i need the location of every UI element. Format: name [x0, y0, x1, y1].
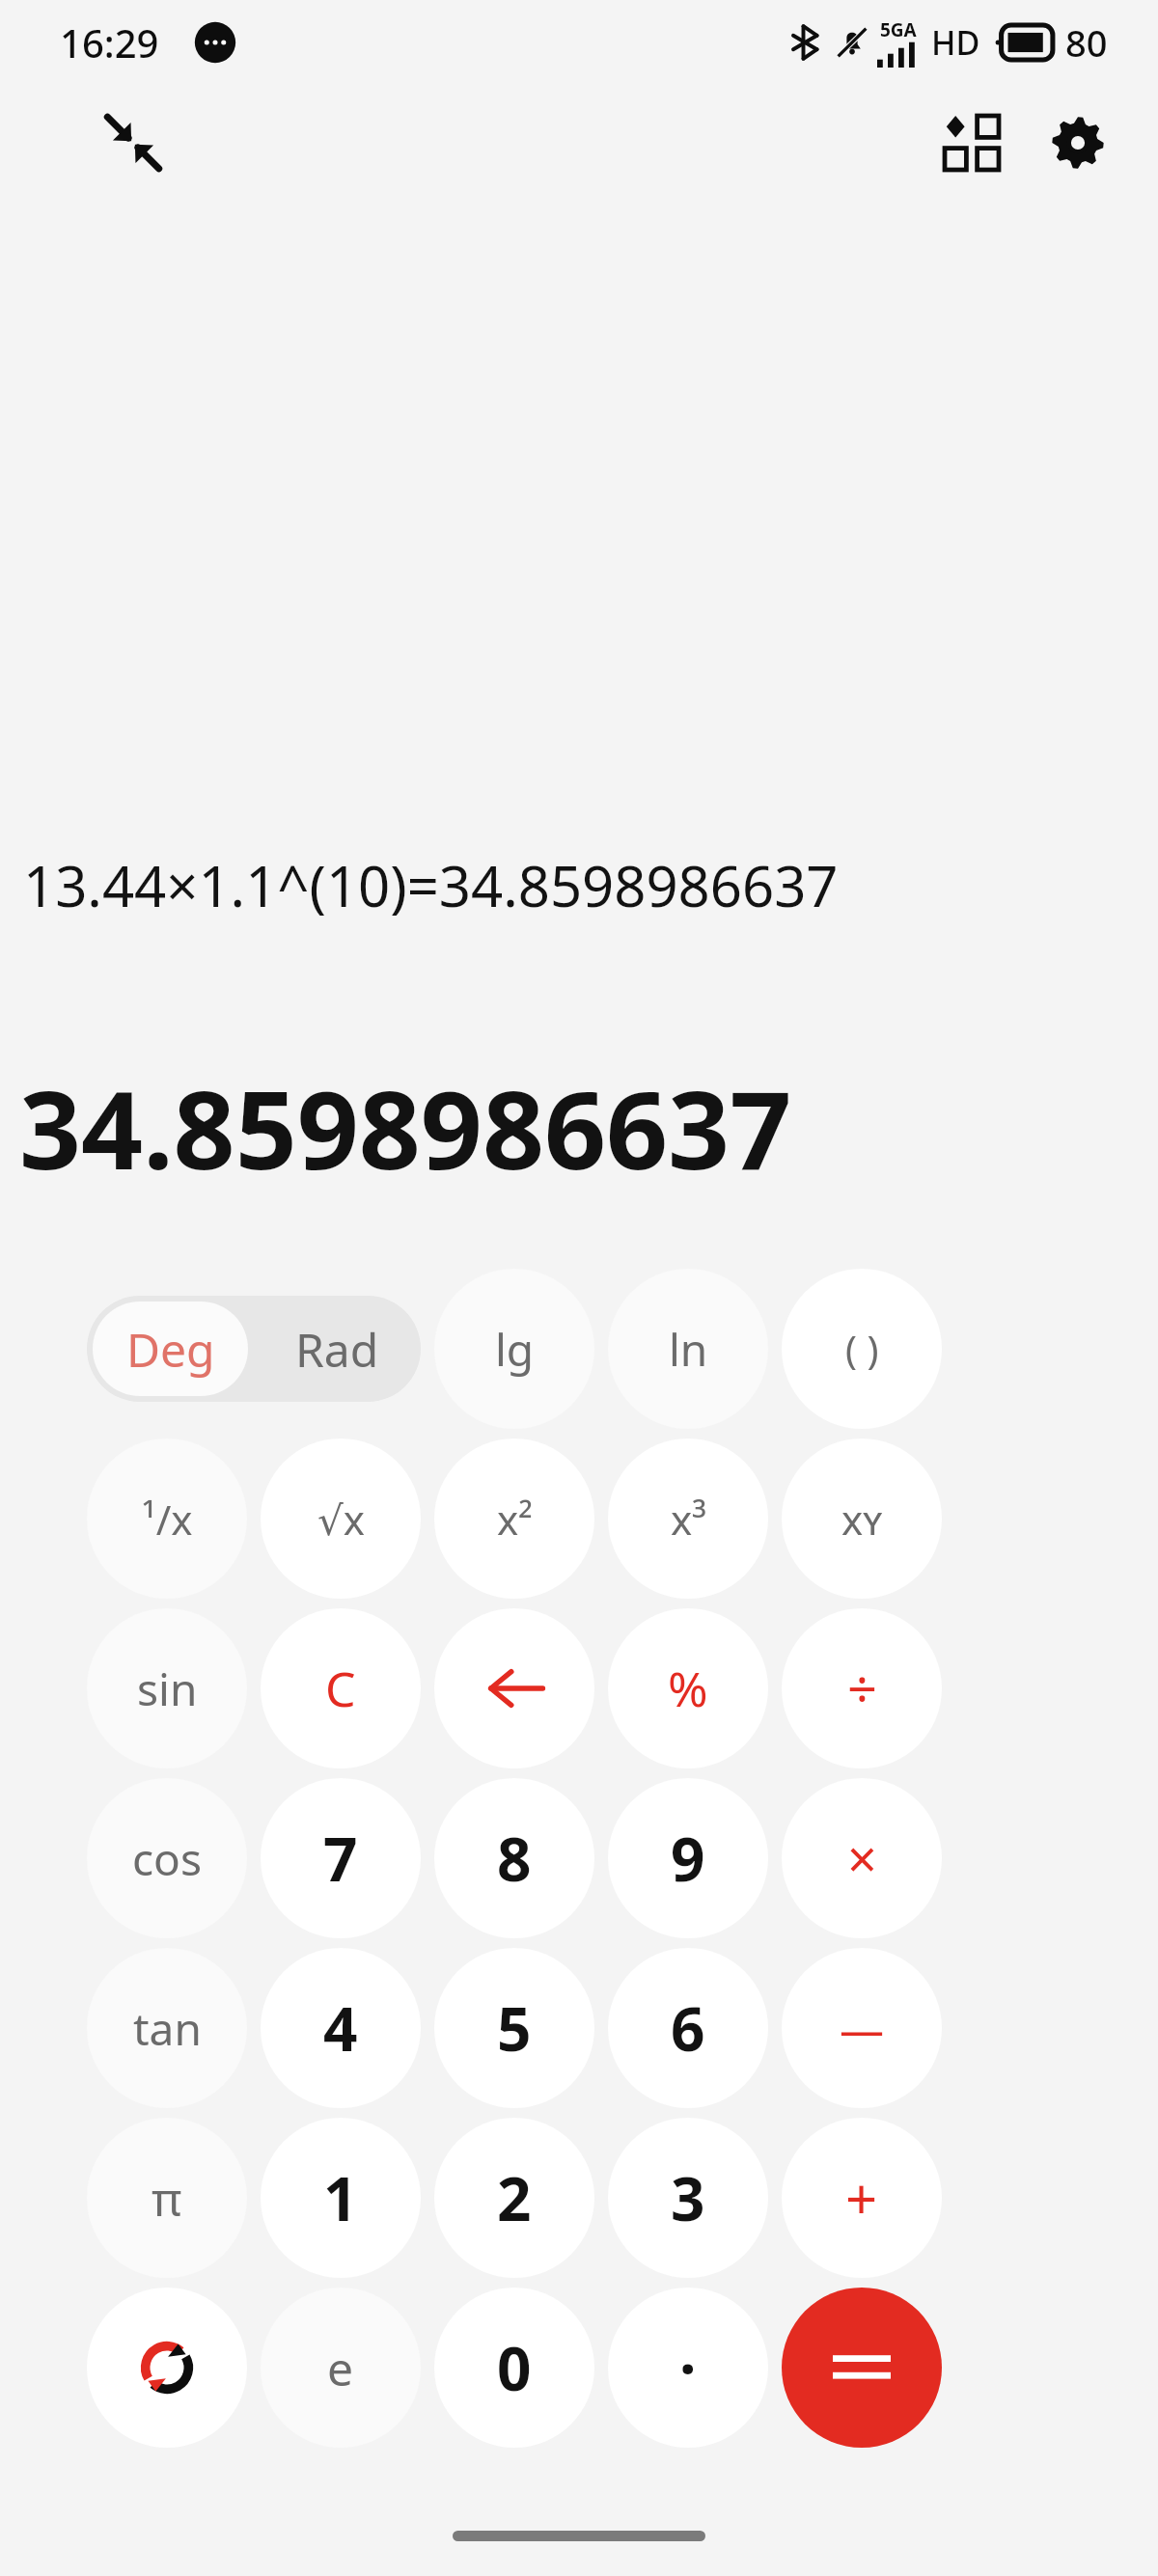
staticText: 3	[671, 2157, 705, 2238]
button[interactable]: 3	[608, 2118, 768, 2278]
staticText: 5GA	[880, 17, 917, 42]
button[interactable]: 4	[261, 1948, 421, 2108]
button[interactable]: sin	[87, 1608, 247, 1768]
staticText: 9	[671, 1818, 705, 1899]
staticText: Rad	[295, 1318, 379, 1381]
staticText: sin	[137, 1658, 198, 1719]
button[interactable]: ( )	[782, 1269, 942, 1429]
button[interactable]: √x	[261, 1439, 421, 1599]
button[interactable]: 0	[434, 2288, 594, 2448]
button[interactable]: x³	[608, 1439, 768, 1599]
button[interactable]: 1	[261, 2118, 421, 2278]
staticText: —	[840, 1998, 884, 2059]
button[interactable]: x²	[434, 1439, 594, 1599]
staticText: 7	[323, 1818, 358, 1899]
button[interactable]: π	[87, 2118, 247, 2278]
staticText: lg	[495, 1319, 535, 1380]
staticText: π	[152, 2167, 182, 2230]
button[interactable]: e	[261, 2288, 421, 2448]
staticText: 0	[497, 2327, 532, 2408]
staticText: 2	[497, 2157, 532, 2238]
button[interactable]: cos	[87, 1778, 247, 1938]
button[interactable]: ×	[782, 1778, 942, 1938]
staticText: %	[668, 1656, 708, 1721]
button[interactable]: ¹/x	[87, 1439, 247, 1599]
staticText: ×	[847, 1822, 877, 1894]
button[interactable]: xʏ	[782, 1439, 942, 1599]
staticText: Deg	[126, 1318, 215, 1381]
button[interactable]: Settings	[1025, 90, 1131, 196]
button[interactable]: 6	[608, 1948, 768, 2108]
button[interactable]: —	[782, 1948, 942, 2108]
staticText: 4	[323, 1987, 358, 2069]
button[interactable]: Equals	[782, 2288, 942, 2448]
button[interactable]: lg	[434, 1269, 594, 1429]
button[interactable]: 5	[434, 1948, 594, 2108]
staticText: HD	[931, 20, 980, 65]
staticText: 6	[671, 1987, 705, 2069]
staticText: ·	[679, 2327, 697, 2408]
staticText: ( )	[845, 1323, 879, 1375]
staticText: 5	[497, 1987, 532, 2069]
staticText: ÷	[847, 1653, 877, 1724]
staticText: tan	[133, 1998, 202, 2059]
staticText: 13.44×1.1^(10)=34.8598986637	[23, 847, 839, 923]
staticText: 16:29	[60, 16, 159, 69]
button[interactable]: 2	[434, 2118, 594, 2278]
button[interactable]: Convert	[87, 2288, 247, 2448]
button[interactable]: C	[261, 1608, 421, 1768]
button[interactable]: Backspace	[434, 1608, 594, 1768]
button[interactable]: ÷	[782, 1608, 942, 1768]
staticText: C	[325, 1656, 356, 1721]
button[interactable]: 9	[608, 1778, 768, 1938]
staticText: 8	[497, 1818, 532, 1899]
button[interactable]: Deg	[93, 1302, 248, 1396]
button[interactable]: History	[919, 90, 1025, 196]
button[interactable]: Rad	[254, 1296, 421, 1402]
button[interactable]: ·	[608, 2288, 768, 2448]
staticText: ln	[669, 1319, 708, 1380]
button[interactable]: +	[782, 2118, 942, 2278]
button[interactable]: 7	[261, 1778, 421, 1938]
staticText: +	[845, 2160, 878, 2236]
staticText: xʏ	[841, 1492, 883, 1547]
staticText: cos	[132, 1828, 202, 1889]
staticText: x²	[497, 1492, 533, 1547]
staticText: e	[327, 2337, 354, 2399]
button[interactable]: tan	[87, 1948, 247, 2108]
staticText: 80	[1065, 17, 1108, 68]
button[interactable]: 8	[434, 1778, 594, 1938]
button[interactable]: Collapse	[81, 91, 185, 195]
staticText: 34.8598986637	[19, 1054, 792, 1201]
staticText: √x	[317, 1492, 365, 1547]
staticText: ¹/x	[142, 1492, 193, 1547]
staticText: 1	[323, 2157, 358, 2238]
button[interactable]: %	[608, 1608, 768, 1768]
staticText: x³	[671, 1492, 706, 1547]
button[interactable]: ln	[608, 1269, 768, 1429]
